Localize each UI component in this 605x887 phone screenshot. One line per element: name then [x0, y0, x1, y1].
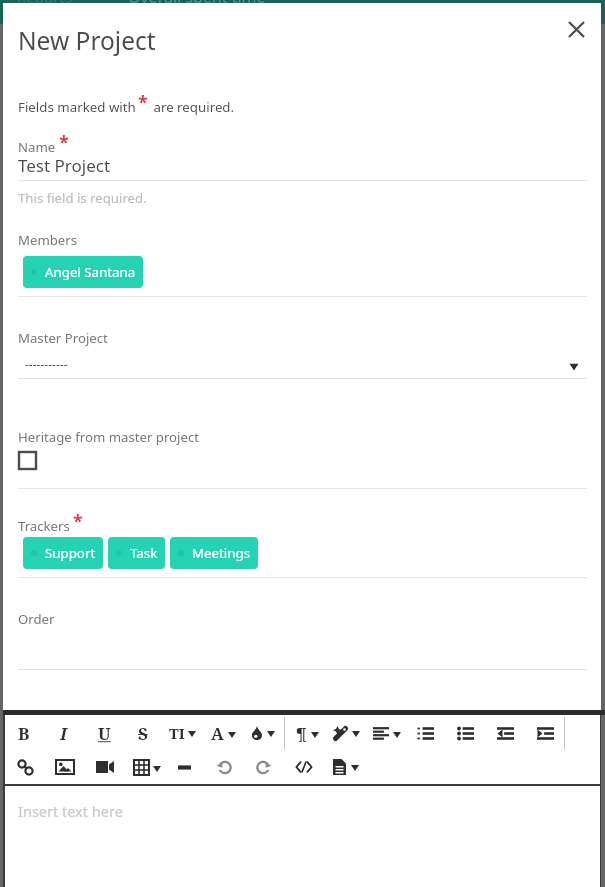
staticText: Trackers	[18, 517, 70, 535]
button[interactable]: Numbered list	[413, 718, 437, 748]
staticText: Order	[18, 610, 55, 628]
button[interactable]: Video	[93, 752, 117, 782]
staticText: Fields marked with	[18, 98, 140, 116]
staticText: A	[211, 722, 224, 745]
button[interactable]: Meetings	[170, 537, 258, 569]
button[interactable]: Text colour	[206, 718, 238, 748]
staticText: *	[73, 509, 83, 534]
staticText: *	[59, 130, 69, 155]
button[interactable]: Angel Santana	[23, 256, 143, 288]
button[interactable]: Undo	[212, 752, 236, 782]
staticText: Test Project	[18, 154, 111, 177]
staticText: Members	[18, 231, 78, 249]
staticText: Name	[18, 138, 56, 156]
button[interactable]: Horizontal rule	[172, 752, 196, 782]
button[interactable]: Bulleted list	[453, 718, 477, 748]
staticText: B	[18, 722, 30, 745]
button[interactable]: Italic	[52, 718, 74, 748]
button[interactable]: Align	[370, 718, 402, 748]
staticText: ¶	[296, 722, 307, 745]
staticText: Meetings	[192, 544, 251, 562]
staticText: S	[138, 722, 148, 745]
button[interactable]: Font size	[166, 718, 198, 748]
button[interactable]: Heritage from master project	[19, 452, 36, 469]
button[interactable]: Underline	[93, 718, 115, 748]
staticText: Overall spent time	[128, 0, 266, 8]
staticText: Angel Santana	[45, 263, 136, 281]
button[interactable]: Link	[13, 752, 37, 782]
staticText: U	[98, 722, 111, 745]
button[interactable]: Clear formatting	[329, 718, 363, 748]
staticText: Heritage from master project	[18, 428, 199, 446]
button[interactable]: Image	[53, 752, 77, 782]
staticText: TI	[169, 723, 185, 743]
button[interactable]: Close	[561, 14, 592, 45]
button[interactable]: Template	[328, 752, 360, 782]
button[interactable]: Support	[23, 537, 103, 569]
staticText: Master Project	[18, 329, 108, 347]
staticText: Task	[130, 544, 158, 562]
button[interactable]: Strikethrough	[132, 718, 154, 748]
button[interactable]: Task	[108, 537, 165, 569]
button[interactable]: Table	[130, 752, 162, 782]
staticText: are required.	[150, 98, 235, 116]
staticText: I	[60, 722, 67, 745]
button[interactable]: Source code	[292, 752, 316, 782]
staticText: Insert text here	[18, 801, 123, 821]
staticText: Reports	[17, 0, 72, 7]
staticText: New Project	[18, 24, 156, 57]
button[interactable]: Bold	[13, 718, 35, 748]
button[interactable]: Redo	[252, 752, 276, 782]
staticText: Support	[45, 544, 96, 562]
button[interactable]: Increase indent	[533, 718, 557, 748]
button[interactable]: Paragraph style	[290, 718, 322, 748]
staticText: This field is required.	[18, 189, 147, 207]
button[interactable]: Decrease indent	[493, 718, 517, 748]
staticText: *	[138, 90, 148, 115]
staticText: -----------	[25, 356, 68, 372]
button[interactable]: Highlight colour	[246, 718, 278, 748]
